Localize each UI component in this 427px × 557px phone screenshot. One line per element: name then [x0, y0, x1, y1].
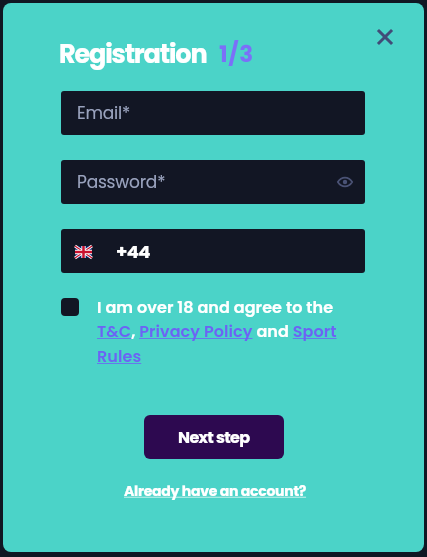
staticText: Next step	[178, 426, 250, 448]
staticText: +44	[116, 239, 150, 264]
button[interactable]: Close	[365, 17, 405, 57]
button[interactable]: Next step	[144, 415, 284, 459]
staticText: Email*	[77, 101, 131, 125]
staticText: Password*	[77, 170, 331, 194]
button[interactable]: Show password	[331, 168, 359, 196]
staticText: Registration	[59, 36, 207, 72]
button[interactable]: Password*	[61, 160, 365, 204]
button[interactable]: Email*	[61, 91, 365, 135]
button[interactable]: I am over 18 and agree to the T&C, Priva…	[97, 296, 341, 368]
button[interactable]: +44	[61, 229, 365, 273]
staticText: 1/3	[219, 38, 254, 70]
button[interactable]: Already have an account?	[122, 479, 309, 503]
button[interactable]: I am over 18 and agree to the terms	[61, 298, 79, 316]
staticText: Already have an account?	[124, 481, 307, 501]
